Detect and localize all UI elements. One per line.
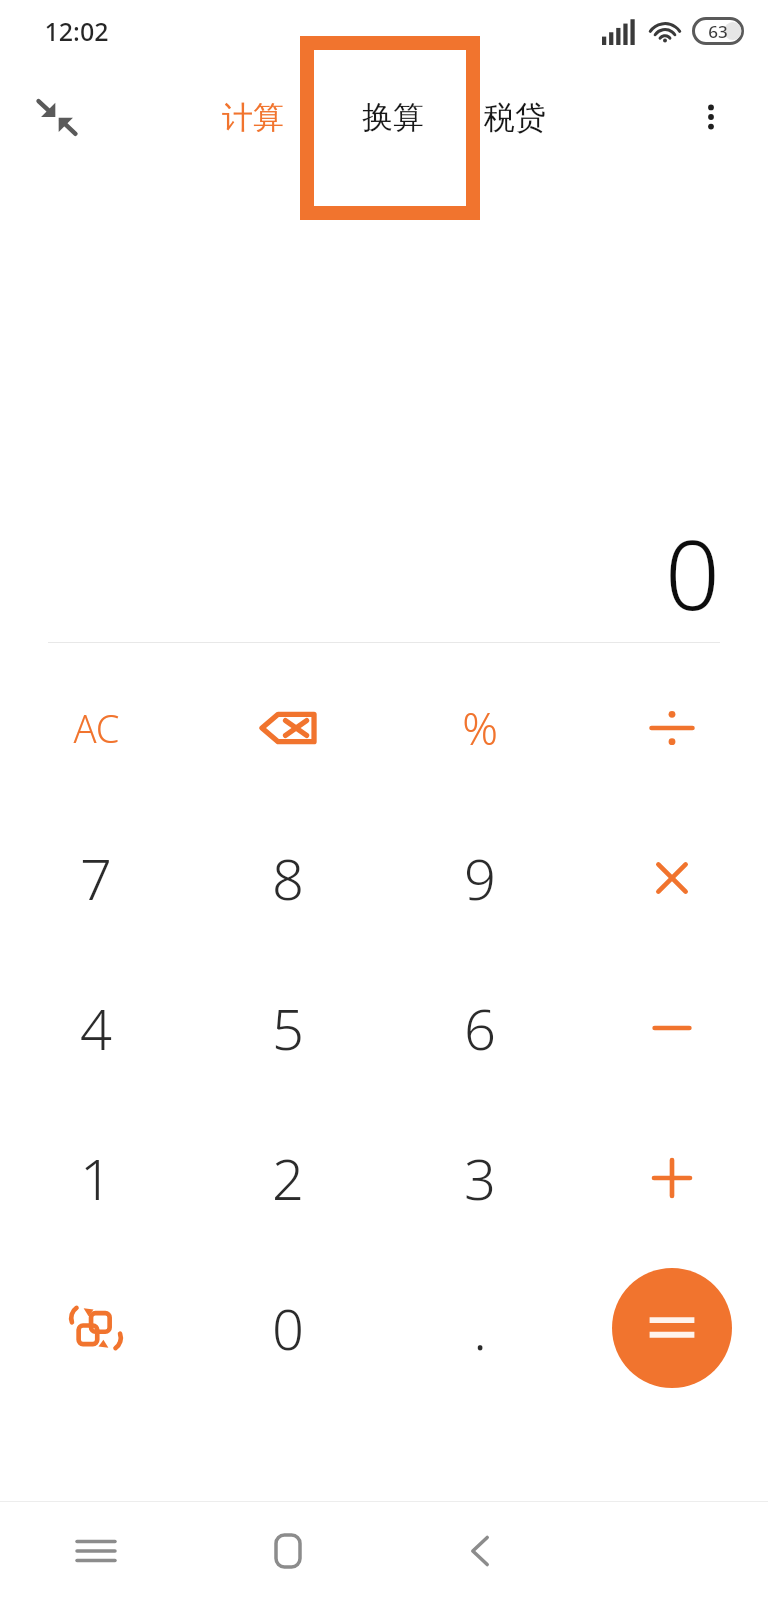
staticText: 4 (80, 990, 112, 1066)
staticText: 5 (272, 990, 304, 1066)
button[interactable]: Recent apps (0, 1502, 192, 1600)
button[interactable]: 1 (0, 1103, 192, 1253)
button[interactable]: Multiply (576, 803, 768, 953)
other: Divide (641, 697, 703, 759)
button[interactable]: 9 (384, 803, 576, 953)
button[interactable]: Minus (576, 953, 768, 1103)
staticText: 计算 (222, 98, 284, 137)
button[interactable]: . (384, 1253, 576, 1403)
other: Multiply (641, 847, 703, 909)
staticText: 9 (464, 840, 496, 916)
staticText: 63 (708, 20, 728, 43)
button[interactable]: % (384, 653, 576, 803)
other: Plus (641, 1147, 703, 1209)
staticText: 换算 (362, 98, 424, 137)
staticText: 1 (80, 1140, 112, 1216)
staticText: 12:02 (44, 14, 109, 48)
button[interactable]: Equals (612, 1268, 732, 1388)
button[interactable]: 税贷 (478, 88, 552, 147)
staticText: 0 (665, 507, 720, 638)
button[interactable]: 8 (192, 803, 384, 953)
button[interactable]: Convert (0, 1253, 192, 1403)
staticText: AC (73, 702, 120, 754)
other: Backspace (257, 697, 319, 759)
staticText: 6 (464, 990, 496, 1066)
button[interactable]: More options (676, 82, 746, 152)
button[interactable]: 3 (384, 1103, 576, 1253)
button[interactable]: Divide (576, 653, 768, 803)
button[interactable]: Back (384, 1502, 576, 1600)
staticText: 8 (272, 840, 304, 916)
staticText: 0 (272, 1290, 304, 1366)
button[interactable]: 换算 (356, 88, 430, 147)
staticText: % (462, 698, 498, 758)
button[interactable]: Home (192, 1502, 384, 1600)
button[interactable]: 6 (384, 953, 576, 1103)
button[interactable]: Equals (576, 1253, 768, 1403)
button[interactable]: Collapse (22, 82, 92, 152)
button[interactable]: Plus (576, 1103, 768, 1253)
button[interactable]: AC (0, 653, 192, 803)
button[interactable]: 5 (192, 953, 384, 1103)
staticText: . (473, 1290, 487, 1366)
staticText: 3 (464, 1140, 496, 1216)
button[interactable]: 2 (192, 1103, 384, 1253)
staticText: 7 (80, 840, 112, 916)
button[interactable]: Backspace (192, 653, 384, 803)
staticText: 税贷 (484, 98, 546, 137)
button[interactable]: 计算 (216, 88, 290, 147)
button[interactable]: 7 (0, 803, 192, 953)
staticText: 2 (272, 1140, 304, 1216)
other: Minus (641, 997, 703, 1059)
button[interactable]: 4 (0, 953, 192, 1103)
other: Convert (65, 1297, 127, 1359)
button[interactable]: 0 (192, 1253, 384, 1403)
